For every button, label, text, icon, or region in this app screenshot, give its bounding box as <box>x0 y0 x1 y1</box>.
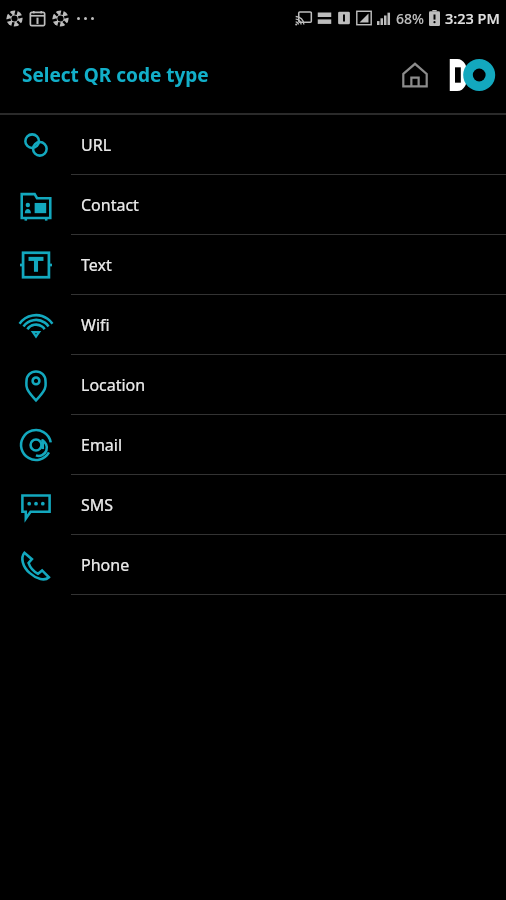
staticText: Email <box>81 434 123 456</box>
staticText: Location <box>81 374 146 396</box>
staticText: Text <box>81 254 112 276</box>
button[interactable]: Contact <box>0 175 506 235</box>
staticText: Wifi <box>81 314 110 336</box>
staticText: Phone <box>81 554 130 576</box>
staticText: 3:23 PM <box>445 8 500 28</box>
button[interactable]: App logo <box>444 49 496 101</box>
staticText: 68% <box>396 9 424 28</box>
button[interactable]: URL <box>0 115 506 175</box>
staticText: SMS <box>81 494 114 516</box>
button[interactable]: SMS <box>0 475 506 535</box>
staticText: URL <box>81 134 112 156</box>
button[interactable]: Email <box>0 415 506 475</box>
button[interactable]: Text <box>0 235 506 295</box>
button[interactable]: Phone <box>0 535 506 595</box>
staticText: Select QR code type <box>22 62 209 88</box>
button[interactable]: Location <box>0 355 506 415</box>
button[interactable]: Wifi <box>0 295 506 355</box>
button[interactable]: Home <box>392 52 438 98</box>
staticText: Contact <box>81 194 139 216</box>
